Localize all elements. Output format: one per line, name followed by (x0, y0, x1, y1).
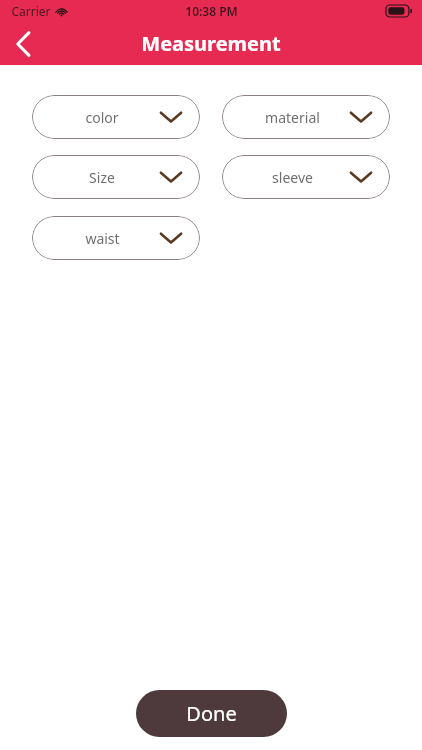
staticText: color (85, 108, 119, 127)
staticText: sleeve (272, 168, 313, 187)
staticText: Carrier (11, 3, 51, 19)
staticText: material (265, 108, 320, 127)
button[interactable]: Back (0, 22, 46, 65)
staticText: Size (89, 168, 115, 187)
button[interactable]: Size (32, 155, 200, 199)
button[interactable]: waist (32, 216, 200, 260)
button[interactable]: color (32, 95, 200, 139)
staticText: 10:38 PM (185, 3, 238, 19)
staticText: Done (186, 700, 237, 727)
button[interactable]: Done (136, 690, 287, 737)
staticText: Measurement (141, 30, 281, 57)
staticText: waist (85, 229, 120, 248)
button[interactable]: sleeve (222, 155, 390, 199)
button[interactable]: material (222, 95, 390, 139)
